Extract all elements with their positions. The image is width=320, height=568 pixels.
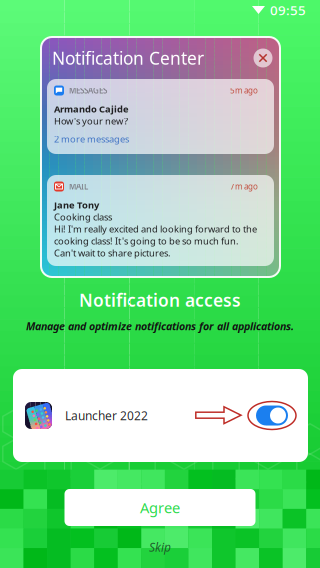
button[interactable]: Launcher 2022 — [13, 369, 308, 462]
staticText: 7m ago — [230, 181, 258, 192]
staticText: Armando Cajide — [54, 103, 129, 115]
staticText: 5m ago — [230, 85, 258, 96]
button[interactable]: Agree — [64, 489, 255, 526]
button[interactable]: Enable Launcher 2022 notifications — [247, 400, 297, 431]
staticText: How's your new? — [54, 115, 128, 127]
staticText: 09:55 — [270, 1, 306, 19]
staticText: Can't wait to share pictures. — [54, 247, 171, 259]
staticText: 2 more messages — [54, 133, 129, 145]
staticText: Notification access — [79, 288, 241, 311]
button[interactable]: Close notification centre — [251, 46, 275, 70]
staticText: Launcher 2022 — [65, 407, 148, 423]
staticText: Notification Center — [52, 46, 204, 69]
staticText: Cooking class — [54, 211, 112, 223]
staticText: Agree — [140, 498, 180, 517]
staticText: Skip — [149, 539, 171, 555]
staticText: MESSAGES — [69, 85, 107, 96]
staticText: Manage and optimize notifications for al… — [26, 319, 294, 333]
staticText: Hi! I'm really excited and looking forwa… — [54, 223, 257, 235]
staticText: Jane Tony — [54, 199, 99, 211]
staticText: cooking class! It's going to be so much … — [54, 235, 239, 247]
staticText: MAIL — [69, 181, 88, 192]
button[interactable]: Skip — [130, 539, 190, 555]
